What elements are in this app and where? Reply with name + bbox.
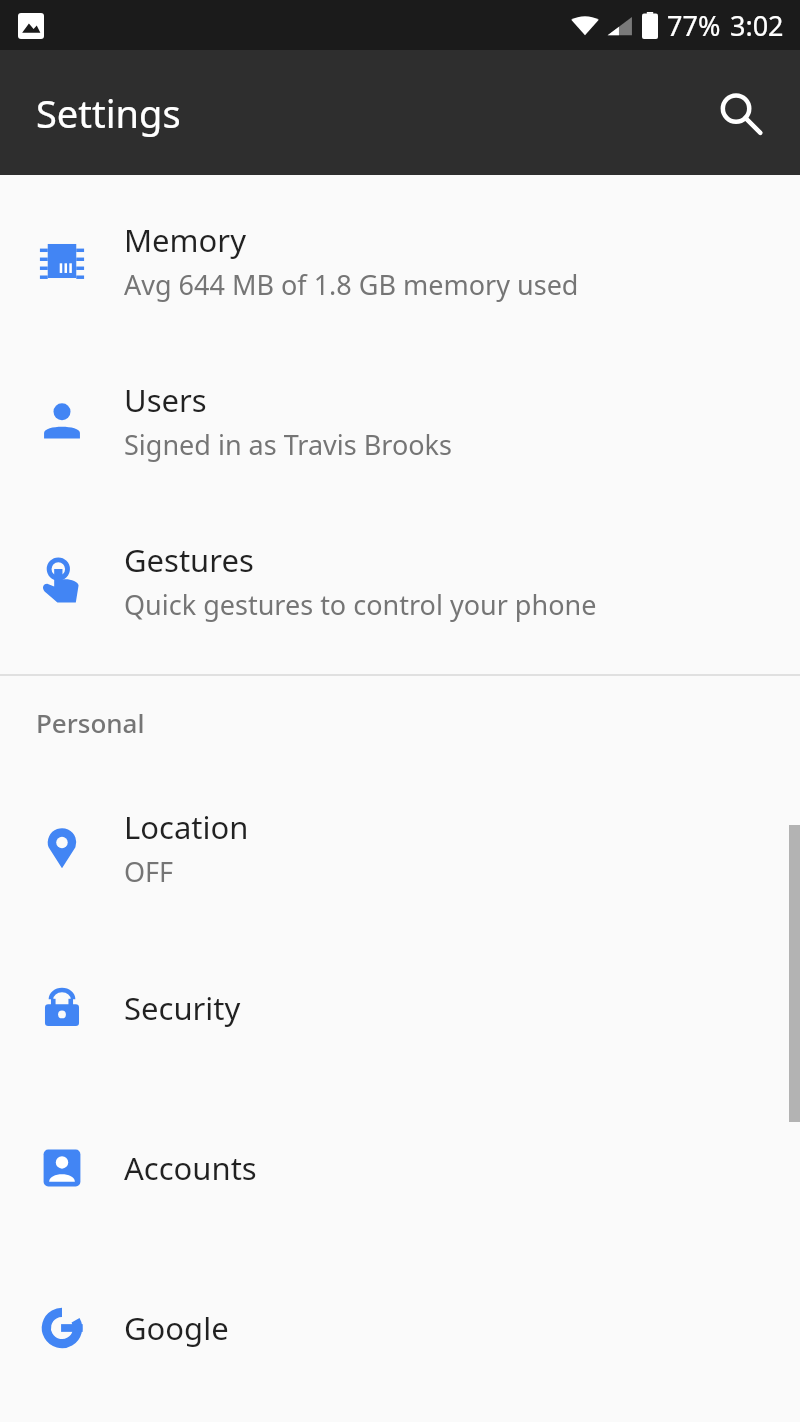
staticText: Memory: [124, 219, 246, 261]
staticText: Quick gestures to control your phone: [124, 586, 597, 623]
button[interactable]: Location: [0, 768, 800, 928]
staticText: Avg 644 MB of 1.8 GB memory used: [124, 266, 579, 303]
button[interactable]: Accounts: [0, 1088, 800, 1248]
staticText: Personal: [36, 705, 145, 740]
staticText: OFF: [124, 853, 174, 890]
button[interactable]: Users: [0, 341, 800, 501]
button[interactable]: Search: [704, 77, 776, 149]
button[interactable]: Security: [0, 928, 800, 1088]
button[interactable]: Memory: [0, 181, 800, 341]
staticText: Location: [124, 806, 249, 848]
staticText: 3:02: [730, 7, 784, 44]
staticText: Users: [124, 379, 207, 421]
staticText: Gestures: [124, 539, 254, 581]
button[interactable]: Gestures: [0, 501, 800, 661]
staticText: Google: [124, 1307, 229, 1349]
staticText: Security: [124, 987, 241, 1029]
staticText: 77%: [667, 7, 721, 44]
button[interactable]: Google: [0, 1248, 800, 1408]
staticText: Settings: [36, 87, 181, 139]
staticText: Accounts: [124, 1147, 257, 1189]
staticText: Signed in as Travis Brooks: [124, 426, 452, 463]
